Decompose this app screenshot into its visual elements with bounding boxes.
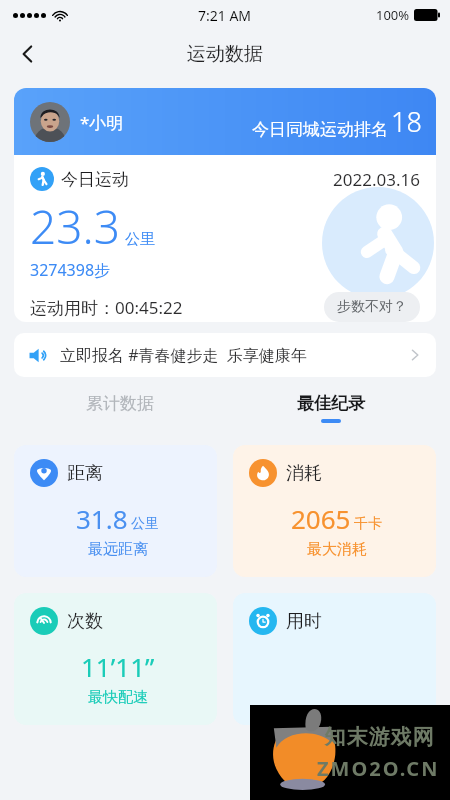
button[interactable]: 消耗: [233, 445, 436, 577]
staticText: 今日同城运动排名: [252, 119, 388, 140]
staticText: 立即报名 #青春健步走 乐享健康年: [60, 344, 307, 366]
staticText: 18: [391, 103, 422, 140]
staticText: ZMO2O.CN: [317, 755, 440, 782]
button[interactable]: 立即报名 #青春健步走 乐享健康年: [14, 333, 436, 377]
staticText: 100%: [376, 6, 410, 24]
button[interactable]: 用时: [233, 593, 436, 725]
staticText: 消耗: [286, 462, 322, 485]
staticText: 累计数据: [86, 393, 154, 414]
staticText: 知末游戏网: [324, 724, 434, 750]
staticText: 11’11”: [81, 649, 155, 684]
staticText: 今日运动: [61, 169, 129, 190]
staticText: 3274398步: [30, 259, 111, 281]
staticText: 最佳纪录: [297, 393, 365, 414]
button[interactable]: 最佳纪录: [225, 393, 436, 423]
button[interactable]: Back: [8, 34, 48, 74]
button[interactable]: 累计数据: [14, 393, 225, 414]
staticText: 运动用时：00:45:22: [30, 296, 183, 319]
staticText: 次数: [67, 610, 103, 633]
staticText: 最远距离: [88, 540, 148, 559]
staticText: 最大消耗: [307, 540, 367, 559]
staticText: 31.8: [76, 501, 128, 536]
staticText: 运动数据: [187, 42, 263, 66]
staticText: 最快配速: [88, 688, 148, 707]
staticText: 千卡: [354, 515, 382, 533]
staticText: *小明: [80, 111, 124, 134]
button[interactable]: 步数不对？: [324, 292, 420, 322]
staticText: 2022.03.16: [333, 168, 420, 191]
staticText: 步数不对？: [337, 298, 407, 316]
staticText: 用时: [286, 610, 322, 633]
staticText: 7:21 AM: [198, 6, 252, 25]
button[interactable]: 次数: [14, 593, 217, 725]
staticText: 公里: [131, 515, 159, 533]
staticText: 23.3: [30, 195, 121, 258]
button[interactable]: *小明: [14, 88, 436, 322]
staticText: 2065: [291, 501, 351, 536]
staticText: 公里: [125, 230, 155, 249]
button[interactable]: 距离: [14, 445, 217, 577]
staticText: 距离: [67, 462, 103, 485]
